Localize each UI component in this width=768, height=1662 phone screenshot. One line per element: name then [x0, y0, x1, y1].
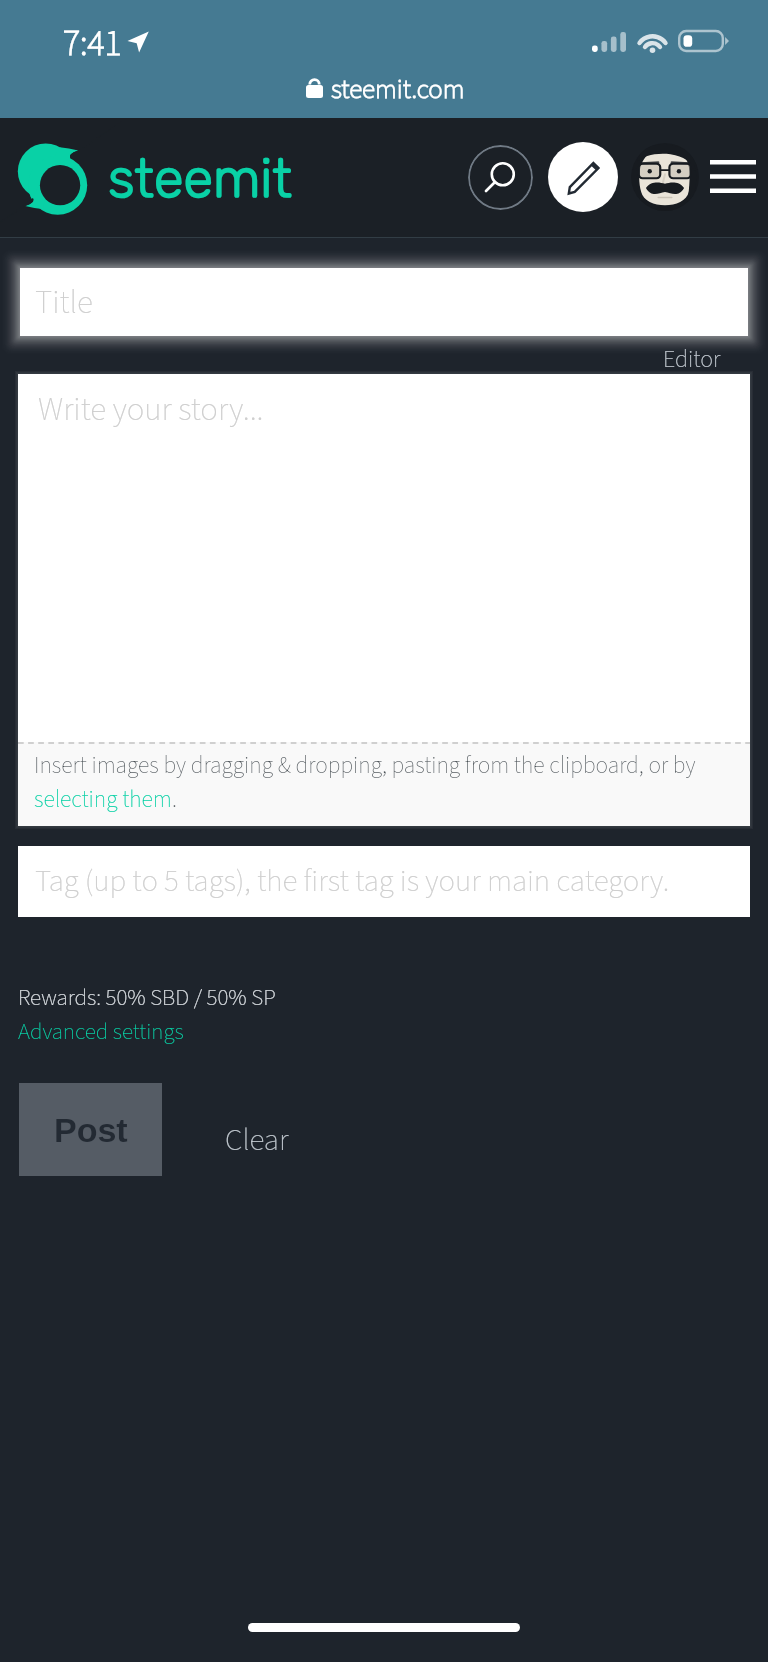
staticText: Editor: [663, 342, 721, 376]
staticText: Post: [54, 1111, 128, 1149]
button[interactable]: Write a post: [548, 142, 618, 212]
button[interactable]: Menu: [700, 143, 766, 209]
staticText: Tag (up to 5 tags), the first tag is you…: [35, 859, 670, 903]
staticText: Insert images by dragging & dropping, pa…: [34, 749, 696, 782]
button[interactable]: Post: [19, 1083, 162, 1176]
staticText: 7:41: [63, 18, 122, 69]
button[interactable]: selecting them: [34, 783, 172, 816]
staticText: Title: [35, 279, 93, 326]
button[interactable]: Search: [468, 145, 533, 210]
button[interactable]: Advanced settings: [18, 1015, 184, 1048]
staticText: Rewards: 50% SBD / 50% SP: [18, 981, 276, 1014]
staticText: steemit: [108, 147, 292, 211]
button[interactable]: steemit: [18, 144, 292, 214]
staticText: .: [172, 783, 177, 816]
staticText: Write your story...: [38, 386, 264, 433]
staticText: steemit.com: [331, 70, 465, 108]
button[interactable]: Tag (up to 5 tags), the first tag is you…: [18, 846, 750, 917]
button[interactable]: Clear: [225, 1118, 289, 1162]
button[interactable]: Your profile: [631, 143, 699, 211]
